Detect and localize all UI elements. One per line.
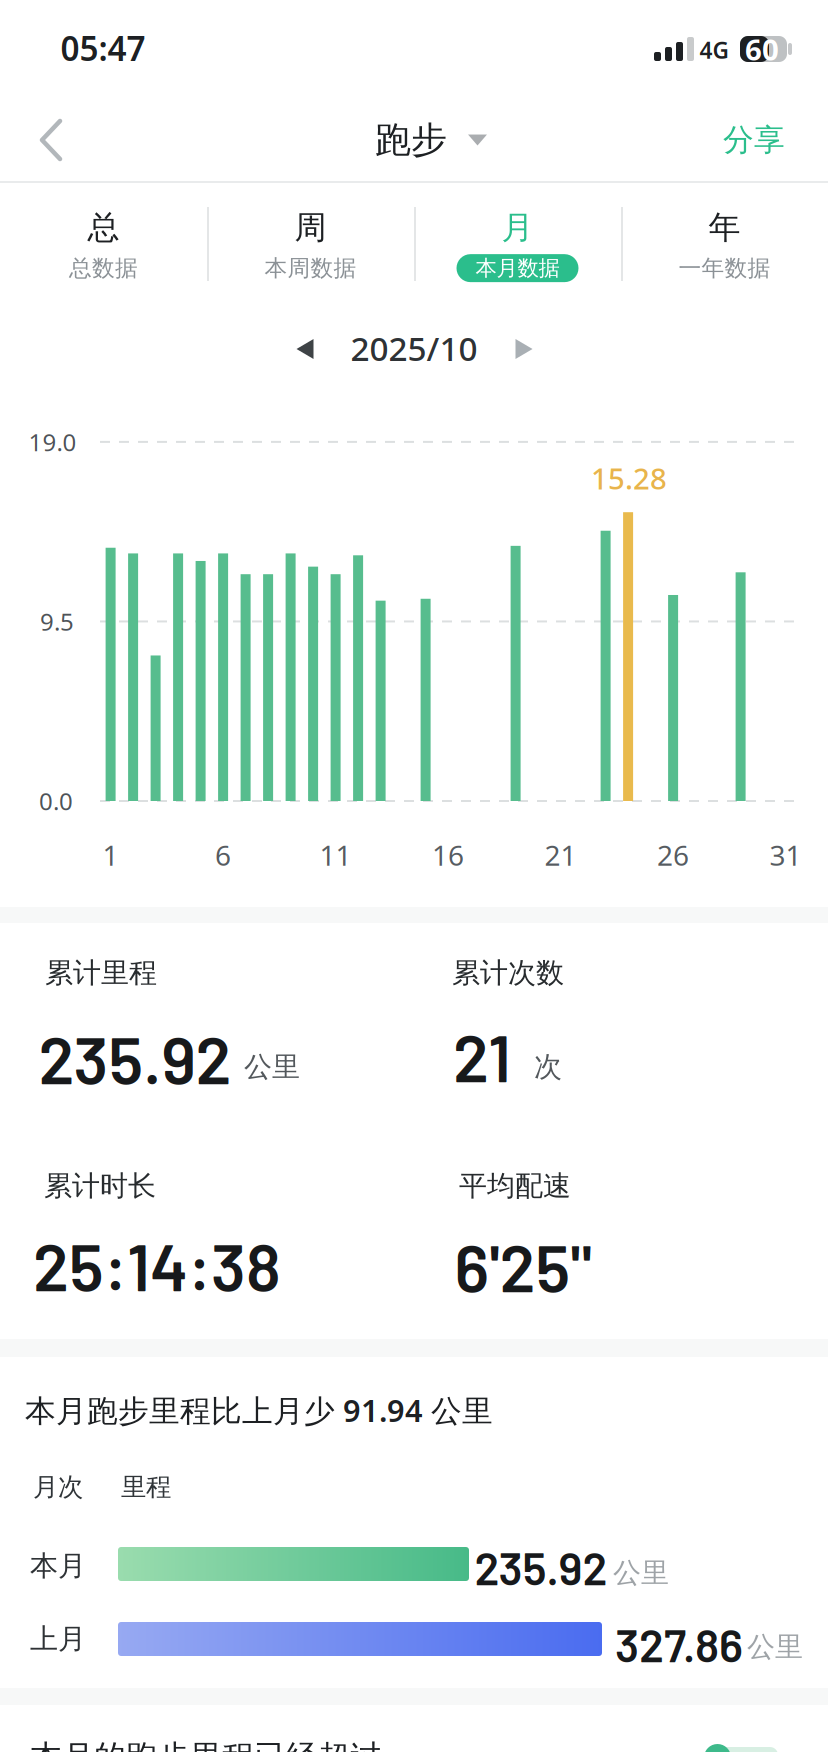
staticText: 15.28 <box>591 458 667 497</box>
button[interactable]: 分享 <box>723 121 785 159</box>
staticText: 月 <box>501 208 533 247</box>
staticText: 2025/10 <box>350 326 477 370</box>
staticText: 6 <box>215 836 231 874</box>
staticText: 本月 <box>30 1549 86 1583</box>
staticText: 31 <box>770 836 802 874</box>
staticText: 一年数据 <box>678 254 770 282</box>
staticText: 跑步 <box>375 118 447 162</box>
staticText: 分享 <box>723 121 785 159</box>
staticText: 235.92 <box>474 1540 607 1594</box>
staticText: 本月的跑步里程已经超过 <box>30 1737 382 1752</box>
staticText: 本月跑步里程比上月少 91.94 公里 <box>25 1390 493 1430</box>
staticText: 里程 <box>121 1471 171 1502</box>
staticText: 年 <box>708 208 740 247</box>
staticText: 19.0 <box>28 426 76 458</box>
staticText: 16 <box>432 836 464 874</box>
button[interactable] <box>515 339 532 359</box>
staticText: 327.86 <box>615 1617 743 1671</box>
staticText: 4G <box>699 35 728 65</box>
button[interactable]: 周 <box>207 208 414 282</box>
staticText: 26 <box>657 836 689 874</box>
staticText: 9.5 <box>40 605 74 637</box>
button[interactable]: 年 <box>621 208 828 282</box>
staticText: 公里 <box>747 1630 803 1664</box>
staticText: 月次 <box>33 1471 83 1502</box>
staticText: 公里 <box>244 1050 300 1084</box>
button[interactable] <box>296 339 313 359</box>
staticText: 累计里程 <box>45 956 157 990</box>
button[interactable] <box>40 119 62 161</box>
staticText: 6'25" <box>454 1227 591 1305</box>
button[interactable]: 总 <box>0 208 207 282</box>
staticText: 累计次数 <box>452 956 564 990</box>
staticText: 上月 <box>30 1622 86 1656</box>
staticText: 本周数据 <box>264 254 356 282</box>
staticText: 次 <box>534 1050 562 1084</box>
staticText: 总数据 <box>69 254 138 282</box>
staticText: 05:47 <box>60 26 145 70</box>
staticText: 21 <box>453 1017 511 1095</box>
staticText: 公里 <box>613 1556 669 1590</box>
staticText: 本月数据 <box>475 255 559 281</box>
staticText: 25:14:38 <box>33 1226 281 1304</box>
staticText: 21 <box>545 836 577 874</box>
staticText: 11 <box>320 836 352 874</box>
staticText: 1 <box>103 836 119 874</box>
staticText: 0.0 <box>39 785 73 817</box>
button[interactable]: 月 <box>414 208 621 282</box>
staticText: 周 <box>294 208 326 247</box>
staticText: 60 <box>745 29 779 68</box>
button[interactable]: 跑步 <box>375 118 487 162</box>
staticText: 平均配速 <box>459 1169 571 1203</box>
staticText: 总 <box>87 208 119 247</box>
staticText: 累计时长 <box>44 1169 156 1203</box>
staticText: 235.92 <box>38 1019 231 1097</box>
